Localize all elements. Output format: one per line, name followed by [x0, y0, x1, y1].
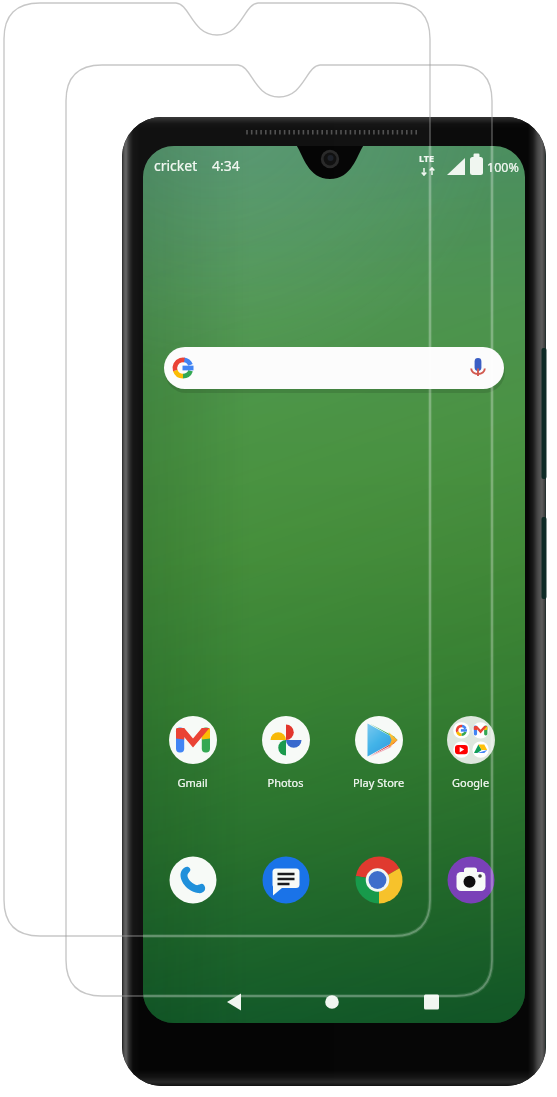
button[interactable]: Tempered glass screen protector product … [0, 0, 557, 1097]
